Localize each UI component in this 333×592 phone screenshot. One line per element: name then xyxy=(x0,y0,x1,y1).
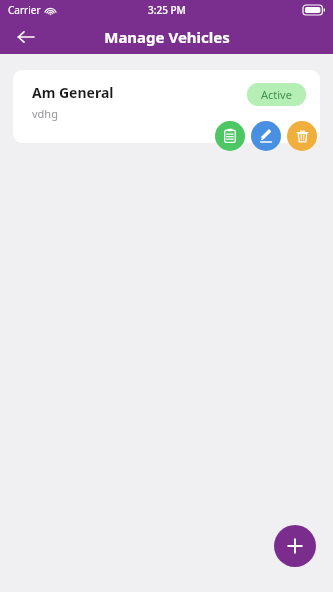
staticText: 3:25 PM xyxy=(148,3,186,17)
button[interactable]: Am General xyxy=(13,70,320,143)
button[interactable]: Back xyxy=(8,20,44,54)
staticText: Active xyxy=(261,87,292,102)
button[interactable]: Active xyxy=(247,83,306,106)
staticText: Am General xyxy=(32,83,114,102)
staticText: vdhg xyxy=(32,106,58,121)
staticText: Carrier xyxy=(8,3,41,17)
button[interactable]: Delete xyxy=(287,121,317,151)
button[interactable]: Inspect xyxy=(215,121,245,151)
button[interactable]: Add vehicle xyxy=(274,525,316,567)
staticText: Manage Vehicles xyxy=(104,27,230,47)
button[interactable]: Edit xyxy=(251,121,281,151)
